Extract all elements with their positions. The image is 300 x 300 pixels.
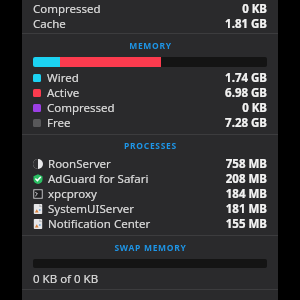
button[interactable]: Active [33, 85, 267, 100]
button[interactable]: Wired [33, 70, 267, 85]
button[interactable]: RoonServer [33, 156, 267, 171]
staticText: 1.74 GB [225, 70, 267, 85]
staticText: Compressed [33, 1, 242, 16]
button[interactable]: Compressed [33, 1, 267, 16]
staticText: 208 MB [225, 171, 267, 186]
button[interactable]: Compressed [33, 100, 267, 115]
staticText: xpcproxy [48, 186, 225, 201]
staticText: Cache [33, 16, 225, 31]
button[interactable] [33, 57, 267, 67]
staticText: RoonServer [48, 156, 225, 171]
button[interactable]: xpcproxy [33, 186, 267, 201]
staticText: Free [47, 115, 225, 130]
button[interactable]: AdGuard for Safari [33, 171, 267, 186]
staticText: SWAP MEMORY [114, 242, 187, 254]
staticText: SystemUIServer [48, 201, 225, 216]
button[interactable]: Cache [33, 16, 267, 31]
button[interactable]: 0 KB of 0 KB [33, 271, 267, 286]
staticText: Compressed [47, 100, 242, 115]
staticText: 155 MB [225, 216, 267, 231]
button[interactable]: SWAP MEMORY [22, 240, 278, 256]
staticText: Wired [47, 70, 225, 85]
staticText: MEMORY [129, 40, 172, 52]
staticText: 758 MB [225, 156, 267, 171]
button[interactable]: Notification Center [33, 216, 267, 231]
staticText: 6.98 GB [225, 85, 267, 100]
button[interactable]: SystemUIServer [33, 201, 267, 216]
staticText: PROCESSES [124, 140, 177, 152]
staticText: 1.81 GB [225, 16, 267, 31]
staticText: 181 MB [225, 201, 267, 216]
staticText: 0 KB of 0 KB [33, 271, 99, 286]
button[interactable]: PROCESSES [22, 138, 278, 154]
staticText: 0 KB [242, 100, 267, 115]
button[interactable]: Free [33, 115, 267, 130]
staticText: AdGuard for Safari [48, 171, 225, 186]
button[interactable]: MEMORY [22, 38, 278, 54]
staticText: Notification Center [48, 216, 225, 231]
staticText: 184 MB [225, 186, 267, 201]
staticText: 7.28 GB [225, 115, 267, 130]
staticText: Active [47, 85, 225, 100]
staticText: 0 KB [242, 1, 267, 16]
